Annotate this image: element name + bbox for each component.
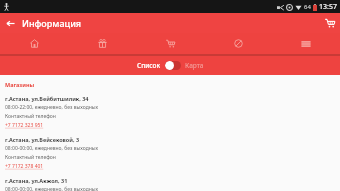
button[interactable]: Gifts [68,33,136,54]
button[interactable]: Menu [272,33,340,54]
staticText: Список [137,61,161,70]
button[interactable]: Switch between list and map [165,61,181,70]
button[interactable]: г.Астана, ул.Бейбитшилик, 34 [5,95,335,129]
staticText: 64 [304,3,311,11]
staticText: г.Астана, ул.Бейбитшилик, 34 [5,95,89,102]
button[interactable]: г.Астана, ул.Акжол, 31 [5,177,335,191]
staticText: +7 7172 378 401 [5,163,44,170]
staticText: г.Астана, ул.Акжол, 31 [5,177,68,184]
button[interactable]: Back [0,13,20,33]
button[interactable]: Cart [136,33,204,54]
staticText: Контактный телефон [5,113,56,120]
staticText: +7 7172 323 951 [5,122,44,129]
staticText: Магазины [5,81,35,88]
staticText: 13:57 [319,2,337,12]
staticText: 08:00-00:00, ежедневно, без выходных [5,145,99,152]
staticText: 08:00-00:00, ежедневно, без выходных [5,186,99,191]
staticText: 08:00-22:00, ежедневно, без выходных [5,104,99,111]
staticText: Контактный телефон [5,154,56,161]
staticText: г.Астана, ул.Бейсековой, 3 [5,136,80,143]
button[interactable]: Cart [320,13,340,33]
staticText: Информация [22,17,82,29]
staticText: Карта [185,61,204,70]
button[interactable]: Home [0,33,68,54]
button[interactable]: г.Астана, ул.Бейсековой, 3 [5,136,335,170]
button[interactable]: Promotions [204,33,272,54]
